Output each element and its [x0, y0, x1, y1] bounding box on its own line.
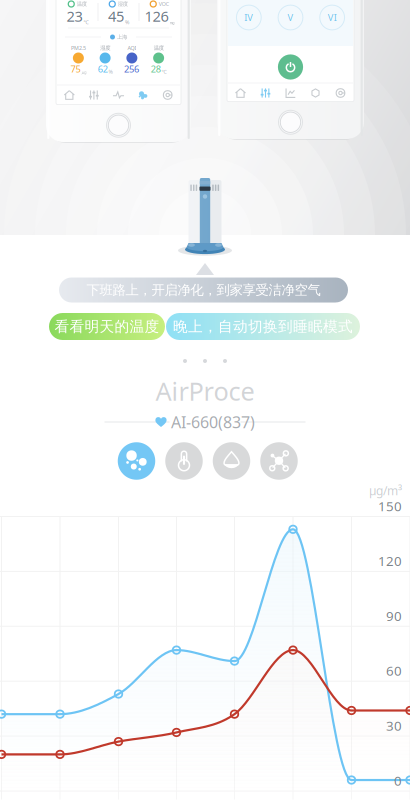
- staticText: 0: [394, 772, 402, 789]
- staticText: 温度: [77, 1, 87, 7]
- button[interactable]: 首页: [60, 86, 78, 104]
- staticText: %: [125, 19, 129, 26]
- staticText: 256: [124, 63, 139, 75]
- staticText: ℃: [161, 68, 166, 75]
- staticText: 湿度: [100, 45, 110, 51]
- staticText: 23: [66, 6, 82, 26]
- button[interactable]: 滤网: [306, 84, 324, 102]
- button[interactable]: PM2.5: [118, 442, 155, 480]
- button[interactable]: 晚上，自动切换到睡眠模式: [166, 313, 360, 340]
- button[interactable]: 下班路上，开启净化，到家享受洁净空气: [59, 277, 348, 302]
- staticText: ㎎: [169, 19, 174, 26]
- staticText: %: [108, 68, 112, 75]
- staticText: 上海: [117, 34, 127, 40]
- button[interactable]: 温度: [165, 442, 203, 480]
- staticText: AQI: [127, 44, 136, 52]
- staticText: AirProce: [155, 374, 254, 408]
- staticText: AI-660(837): [171, 411, 255, 433]
- staticText: VI: [328, 11, 337, 24]
- staticText: 150: [378, 497, 402, 515]
- staticText: 120: [378, 552, 402, 570]
- staticText: 75: [70, 63, 80, 75]
- button[interactable]: 设置: [331, 84, 349, 102]
- staticText: 30: [386, 717, 402, 734]
- staticText: 126: [144, 6, 168, 26]
- staticText: PM2.5: [71, 44, 86, 52]
- button[interactable]: 趋势: [109, 86, 127, 104]
- staticText: 62: [98, 63, 108, 75]
- button[interactable]: 甲醛: [260, 442, 298, 480]
- button[interactable]: 设置: [159, 86, 177, 104]
- staticText: ℃: [83, 19, 88, 26]
- button[interactable]: 模式: [256, 84, 274, 102]
- staticText: 60: [386, 662, 402, 679]
- button[interactable]: 首页: [231, 84, 249, 102]
- staticText: µg/m³: [369, 482, 402, 498]
- button[interactable]: 看看明天的温度: [49, 313, 165, 340]
- staticText: IV: [244, 11, 253, 24]
- button[interactable]: 湿度: [213, 442, 250, 480]
- button[interactable]: 模式: [85, 86, 103, 104]
- staticText: 90: [386, 607, 402, 625]
- staticText: V: [287, 11, 293, 24]
- staticText: 28: [151, 63, 161, 75]
- staticText: 温度: [154, 45, 164, 51]
- staticText: 下班路上，开启净化，到家享受洁净空气: [86, 282, 320, 298]
- staticText: 看看明天的温度: [54, 317, 159, 335]
- staticText: 45: [108, 6, 124, 26]
- staticText: 晚上，自动切换到睡眠模式: [173, 317, 353, 335]
- button[interactable]: 空气: [134, 86, 152, 104]
- staticText: ㎍: [81, 69, 86, 75]
- button[interactable]: 统计: [281, 84, 299, 102]
- staticText: 湿度: [118, 1, 128, 7]
- staticText: VOC: [159, 0, 169, 8]
